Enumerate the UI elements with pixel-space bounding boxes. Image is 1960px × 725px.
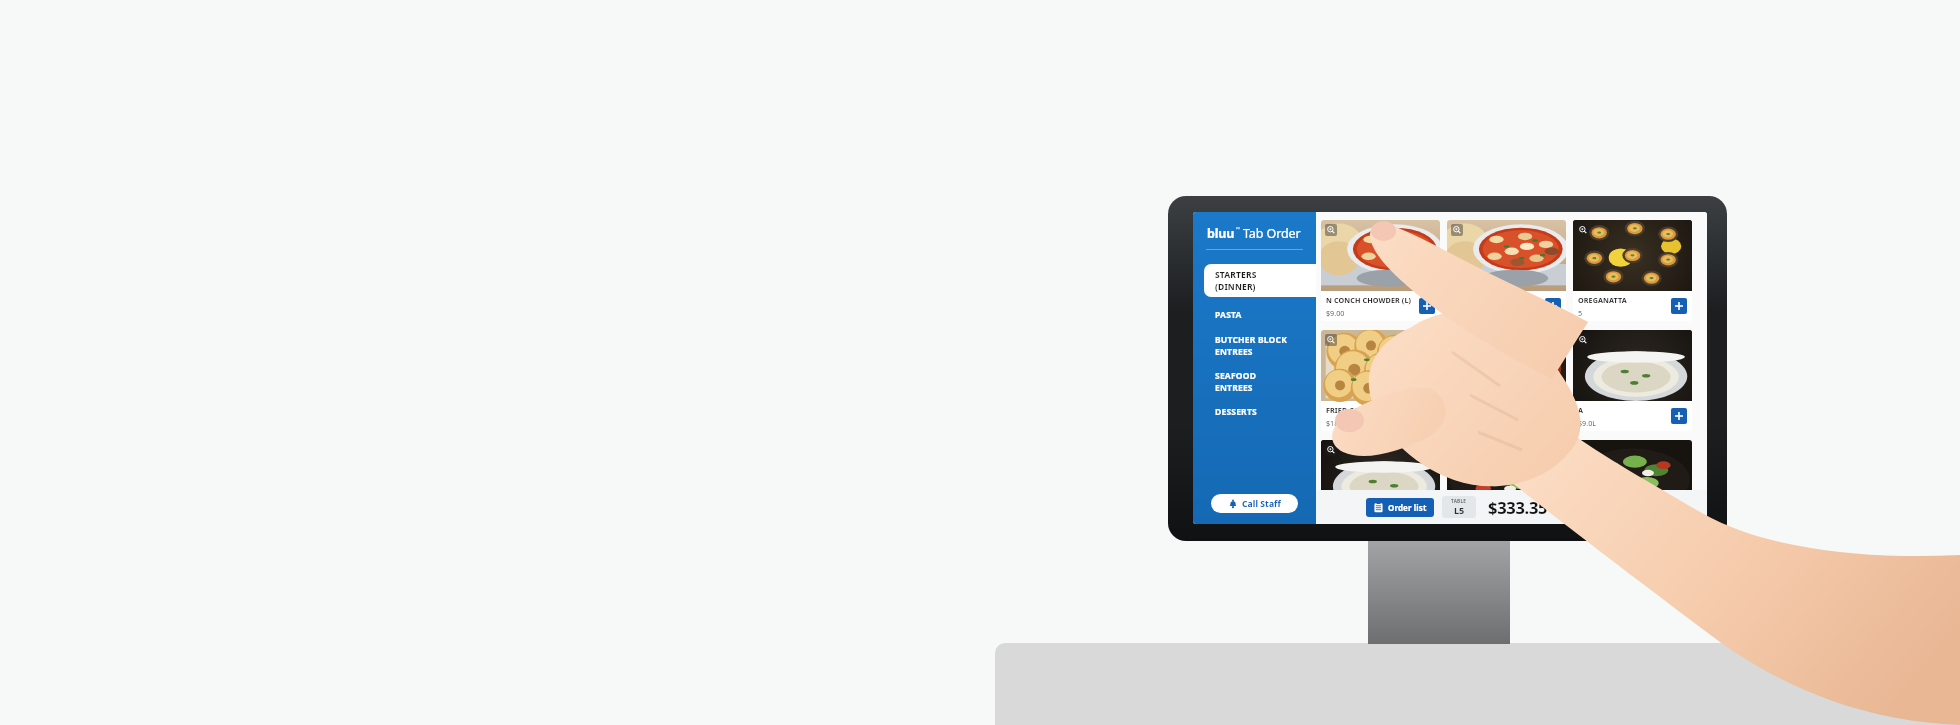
- button[interactable]: Call Staff: [1211, 494, 1298, 513]
- staticText: SEAFOOD: [1215, 370, 1257, 382]
- button[interactable]: Add item: [1671, 298, 1687, 314]
- staticText: $333.35: [1488, 496, 1548, 518]
- staticText: ENTREES: [1215, 382, 1253, 394]
- button[interactable]: Zoom photo: [1321, 220, 1440, 321]
- button[interactable]: Zoom photo: [1573, 220, 1692, 321]
- staticText: FRIED CALAMARI: [1326, 405, 1388, 415]
- button[interactable]: BUTCHER BLOCK: [1193, 334, 1316, 358]
- button[interactable]: bluu: [1207, 225, 1316, 242]
- staticText: BUTCHER BLOCK: [1215, 334, 1287, 346]
- button[interactable]: Add item: [1419, 298, 1435, 314]
- staticText: PASTA: [1215, 309, 1242, 321]
- button[interactable]: Zoom photo: [1577, 334, 1589, 346]
- button[interactable]: Zoom photo: [1447, 330, 1566, 431]
- button[interactable]: Zoom photo: [1577, 224, 1589, 236]
- staticText: $9.0L: [1578, 418, 1597, 428]
- button[interactable]: Zoom photo: [1325, 334, 1337, 346]
- button[interactable]: Zoom photo: [1321, 440, 1440, 524]
- staticText: Call Staff: [1242, 498, 1281, 510]
- button[interactable]: Zoom photo: [1451, 224, 1463, 236]
- staticText: DESSERTS: [1215, 406, 1257, 418]
- button[interactable]: Zoom photo: [1325, 444, 1337, 456]
- staticText: $18.95: [1326, 418, 1349, 428]
- staticText: N CONCH CHOWDER (L): [1326, 295, 1412, 305]
- button[interactable]: Zoom photo: [1325, 224, 1337, 236]
- staticText: OREGANATTA: [1578, 295, 1627, 305]
- button[interactable]: TABLE: [1442, 496, 1476, 518]
- button[interactable]: DESSERTS: [1193, 406, 1316, 418]
- staticText: L5: [1454, 504, 1465, 516]
- staticText: A: [1578, 405, 1584, 415]
- button[interactable]: Order list: [1366, 498, 1434, 517]
- staticText: 5: [1578, 308, 1583, 318]
- staticText: ENTREES: [1215, 346, 1253, 358]
- staticText: bluu: [1207, 225, 1235, 242]
- staticText: Tab Order: [1243, 225, 1301, 242]
- staticText: MUSSELS FRA DIAVO: [1452, 405, 1527, 415]
- button[interactable]: PASTA: [1193, 309, 1316, 321]
- button[interactable]: STARTERS: [1204, 264, 1316, 297]
- staticText: N CONCH CHOWDER (S): [1452, 295, 1537, 305]
- button[interactable]: Zoom photo: [1577, 444, 1589, 456]
- staticText: Order list: [1388, 502, 1427, 513]
- staticText: ™: [1236, 226, 1240, 233]
- button[interactable]: SEAFOOD: [1193, 370, 1316, 394]
- button[interactable]: Add item: [1545, 298, 1561, 314]
- button[interactable]: Zoom photo: [1573, 330, 1692, 431]
- button[interactable]: Zoom photo: [1447, 220, 1566, 321]
- button[interactable]: Zoom photo: [1447, 440, 1566, 524]
- staticText: TABLE: [1451, 498, 1467, 504]
- button[interactable]: Add item: [1671, 408, 1687, 424]
- button[interactable]: Zoom photo: [1321, 330, 1440, 431]
- staticText: STARTERS: [1215, 269, 1257, 281]
- staticText: $9.00: [1326, 308, 1345, 318]
- staticText: (DINNER): [1215, 281, 1256, 293]
- button[interactable]: Zoom photo: [1573, 440, 1692, 524]
- other: Hand tapping the screen: [0, 0, 1960, 725]
